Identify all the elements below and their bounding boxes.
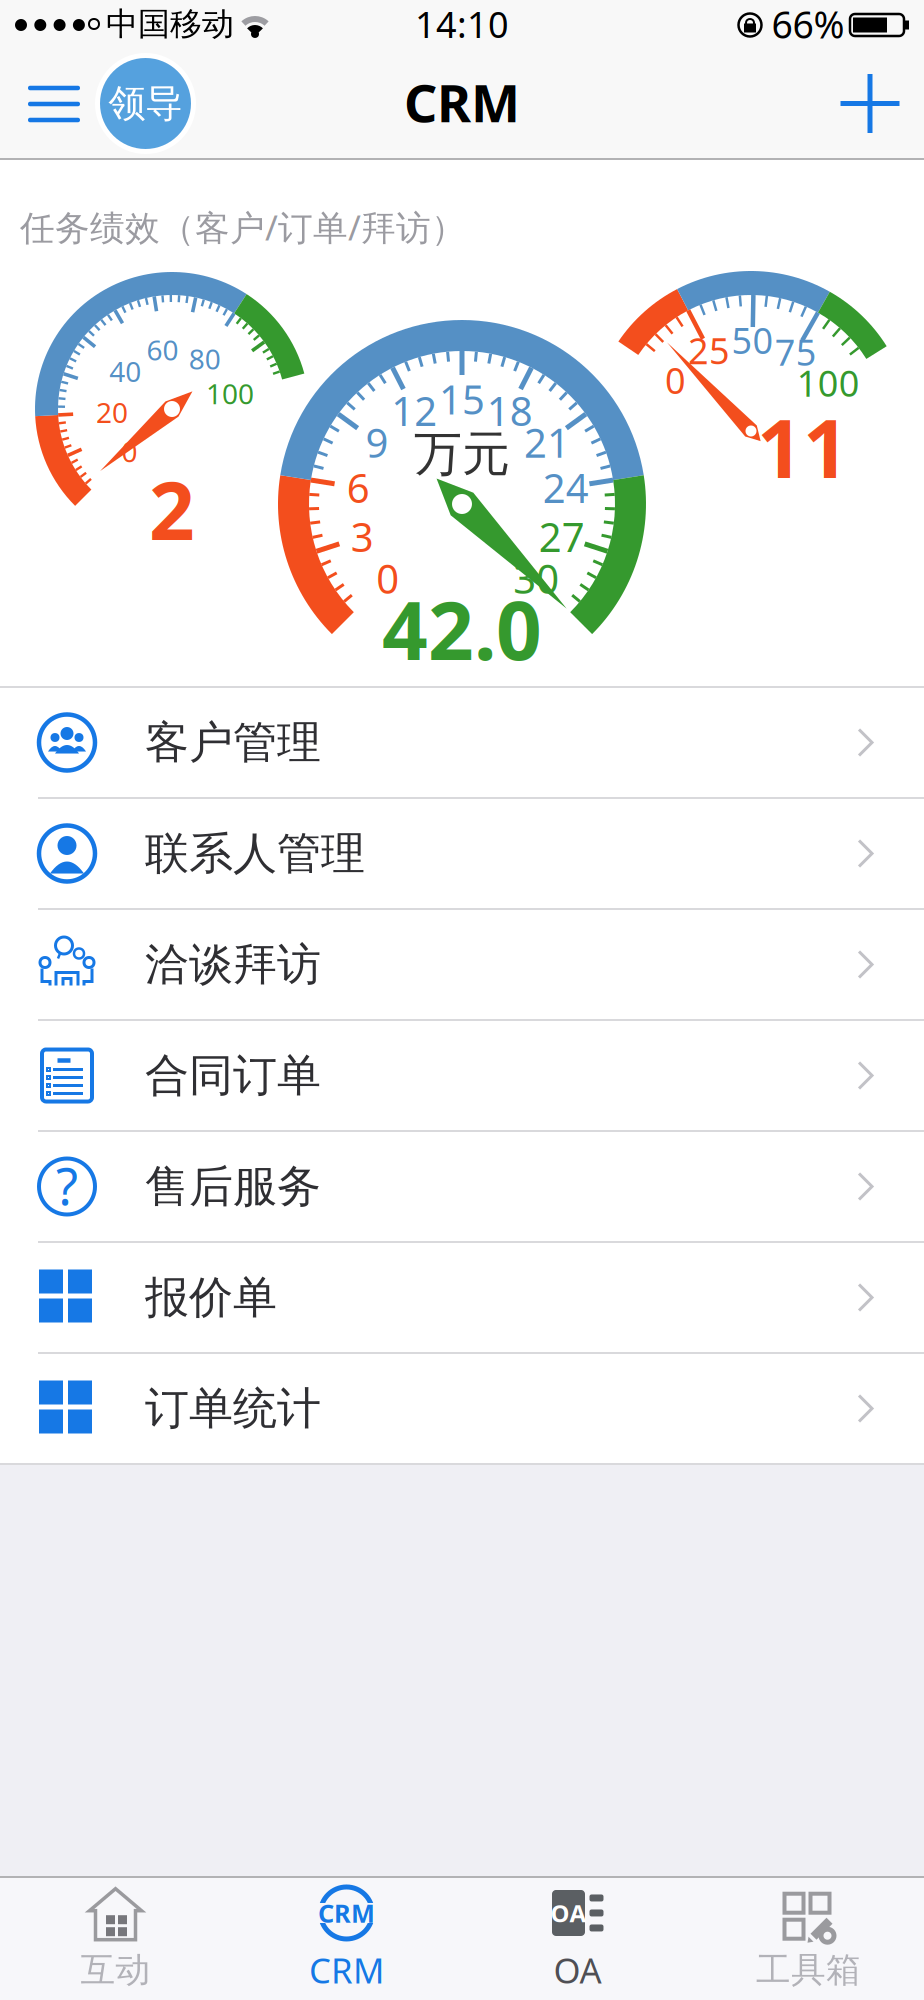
button[interactable]: CRM — [231, 1878, 462, 2000]
staticText: 2 — [149, 456, 195, 562]
button[interactable]: Add — [840, 74, 899, 133]
staticText: 互动 — [80, 1949, 150, 1991]
staticText: ? — [56, 1152, 78, 1219]
staticText: 18 — [487, 384, 533, 437]
staticText: 40 — [109, 353, 141, 390]
button[interactable]: 客户管理 — [0, 688, 924, 797]
staticText: 21 — [524, 416, 570, 469]
staticText: 领导 — [108, 81, 182, 126]
staticText: 60 — [147, 331, 179, 368]
staticText: CRM — [309, 1947, 384, 1993]
staticText: OA — [553, 1947, 601, 1993]
button[interactable]: 领导 — [95, 53, 196, 154]
staticText: CRM — [318, 1896, 375, 1930]
staticText: 25 — [688, 326, 730, 374]
staticText: 0 — [122, 433, 138, 470]
staticText: 100 — [797, 359, 860, 407]
staticText: 75 — [775, 328, 817, 376]
staticText: 中国移动 — [106, 4, 234, 44]
staticText: 30 — [513, 552, 559, 605]
staticText: 客户管理 — [145, 715, 321, 769]
button[interactable]: OA — [462, 1878, 693, 2000]
staticText: 任务绩效（客户/订单/拜访） — [20, 204, 466, 250]
staticText: 9 — [366, 416, 389, 469]
staticText: 80 — [189, 340, 221, 377]
button[interactable]: 互动 — [0, 1878, 231, 2000]
button[interactable]: 洽谈拜访 — [0, 910, 924, 1019]
button[interactable]: ? — [0, 1132, 924, 1241]
staticText: 洽谈拜访 — [145, 937, 321, 991]
button[interactable]: 合同订单 — [0, 1021, 924, 1130]
button[interactable]: 工具箱 — [693, 1878, 924, 2000]
staticText: 66% — [771, 0, 844, 49]
button[interactable]: 报价单 — [0, 1243, 924, 1352]
staticText: CRM — [404, 67, 520, 137]
staticText: 11 — [757, 394, 849, 500]
staticText: 工具箱 — [756, 1949, 861, 1991]
staticText: 订单统计 — [145, 1381, 321, 1435]
staticText: 万元 — [414, 424, 510, 483]
staticText: 15 — [439, 372, 485, 425]
staticText: 24 — [543, 461, 589, 514]
staticText: 报价单 — [145, 1270, 277, 1324]
staticText: 0 — [665, 356, 686, 404]
staticText: 20 — [96, 393, 128, 431]
staticText: 6 — [347, 461, 370, 514]
staticText: 12 — [391, 384, 437, 437]
staticText: 100 — [206, 375, 254, 412]
button[interactable]: 联系人管理 — [0, 799, 924, 908]
staticText: 14:10 — [415, 0, 509, 48]
staticText: 27 — [539, 510, 585, 563]
staticText: 联系人管理 — [145, 826, 365, 880]
staticText: 0 — [376, 552, 399, 605]
staticText: 合同订单 — [145, 1048, 321, 1102]
staticText: 50 — [732, 316, 774, 364]
button[interactable]: Menu — [0, 50, 88, 156]
button[interactable]: 订单统计 — [0, 1354, 924, 1463]
staticText: 42.0 — [382, 576, 542, 682]
staticText: 3 — [351, 510, 374, 563]
staticText: OA — [550, 1897, 586, 1929]
staticText: 售后服务 — [145, 1159, 321, 1213]
